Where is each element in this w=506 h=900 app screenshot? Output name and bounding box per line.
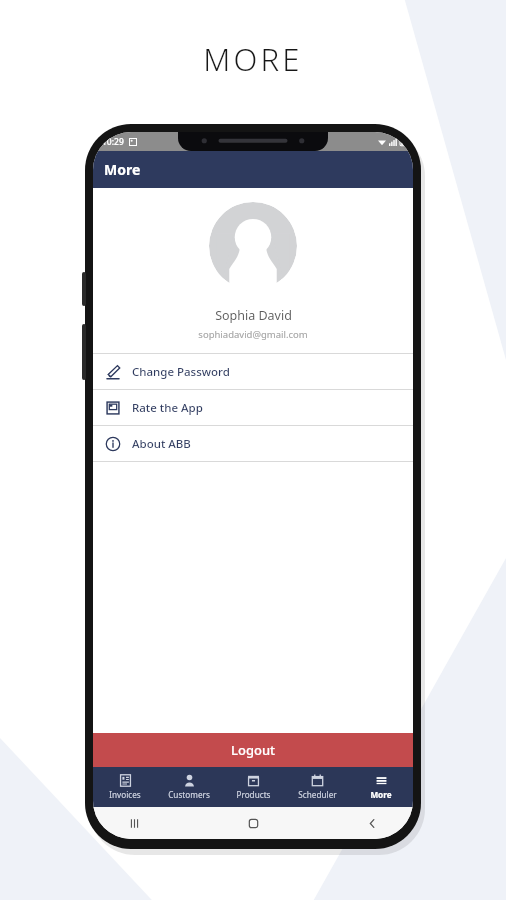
button[interactable]: Invoices — [93, 767, 157, 807]
staticText: Products — [236, 789, 271, 800]
button[interactable]: About ABB — [93, 426, 413, 461]
staticText: More — [104, 160, 141, 179]
button[interactable]: Rate the App — [93, 390, 413, 425]
staticText: sophiadavid@gmail.com — [198, 328, 308, 341]
staticText: Logout — [231, 741, 276, 759]
button[interactable]: Scheduler — [285, 767, 349, 807]
button[interactable]: Recents — [123, 812, 145, 834]
button[interactable]: Logout — [93, 733, 413, 767]
staticText: More — [370, 789, 392, 800]
staticText: Sophia David — [215, 307, 292, 324]
staticText: Scheduler — [298, 789, 337, 800]
button[interactable]: Customers — [157, 767, 221, 807]
staticText: Rate the App — [132, 400, 203, 416]
staticText: Customers — [168, 789, 210, 800]
button[interactable]: More — [349, 767, 413, 807]
staticText: 10:29 — [102, 136, 124, 148]
button[interactable]: Home — [242, 812, 264, 834]
button[interactable]: Products — [221, 767, 285, 807]
staticText: Change Password — [132, 364, 230, 380]
staticText: About ABB — [132, 436, 191, 452]
button[interactable]: Change Password — [93, 354, 413, 389]
staticText: Invoices — [109, 789, 141, 800]
staticText: MORE — [203, 38, 303, 80]
button[interactable]: Back — [361, 812, 383, 834]
